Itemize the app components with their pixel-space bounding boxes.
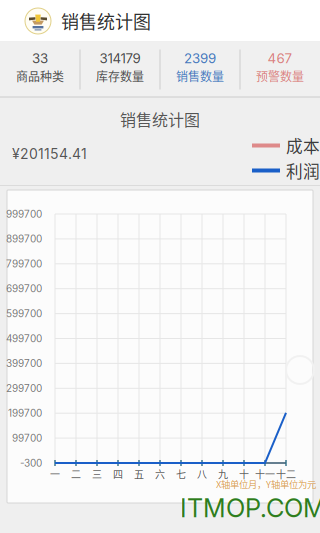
staticText: 二 — [71, 467, 81, 481]
staticText: 599700 — [6, 308, 42, 320]
staticText: 商品种类 — [16, 67, 64, 85]
button[interactable]: 314179 — [80, 41, 159, 97]
staticText: 199700 — [8, 407, 42, 419]
staticText: 499700 — [6, 332, 42, 345]
staticText: 899700 — [6, 233, 42, 245]
staticText: X轴单位月，Y轴单位为元 — [216, 477, 316, 491]
staticText: 七 — [176, 467, 186, 481]
staticText: 299700 — [6, 382, 42, 394]
staticText: 314179 — [99, 50, 140, 66]
staticText: 99700 — [12, 432, 42, 444]
staticText: 库存数量 — [96, 67, 144, 85]
staticText: 销售统计图 — [61, 8, 151, 34]
staticText: 467 — [267, 50, 292, 66]
staticText: 999700 — [6, 208, 42, 220]
staticText: 399700 — [6, 357, 42, 369]
staticText: 四 — [113, 467, 123, 481]
staticText: 三 — [92, 467, 102, 481]
staticText: 九 — [218, 467, 228, 481]
staticText: 五 — [134, 467, 144, 481]
staticText: 八 — [197, 467, 207, 481]
staticText: 一 — [50, 467, 60, 481]
staticText: 销售统计图 — [120, 107, 200, 131]
staticText: ¥201154.41 — [12, 145, 87, 162]
staticText: 预警数量 — [256, 67, 304, 85]
staticText: 六 — [155, 467, 165, 481]
staticText: 33 — [32, 50, 48, 66]
staticText: -300 — [20, 457, 42, 469]
staticText: 699700 — [6, 283, 42, 295]
staticText: 十 — [239, 467, 249, 481]
button[interactable]: 33 — [0, 41, 79, 97]
staticText: 销售数量 — [176, 67, 224, 85]
staticText: 2399 — [184, 50, 216, 66]
button[interactable]: 2399 — [160, 41, 239, 97]
staticText: 十一 — [255, 467, 275, 481]
staticText: 799700 — [6, 258, 42, 270]
staticText: 成本 — [286, 133, 320, 157]
button[interactable]: 467 — [240, 41, 319, 97]
staticText: ITMOP.COM — [180, 493, 320, 523]
staticText: 利润 — [286, 158, 320, 182]
staticText: 十二 — [276, 467, 296, 481]
